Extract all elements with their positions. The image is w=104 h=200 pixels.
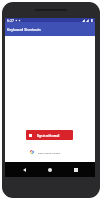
button[interactable]: Home — [43, 163, 57, 177]
button[interactable]: Recent apps — [69, 163, 83, 177]
button[interactable]: Sign in with Google — [26, 147, 73, 157]
staticText: 6:27 — [7, 18, 14, 22]
staticText: Sign in with Google — [38, 151, 61, 154]
button[interactable]: Sign in with email — [26, 130, 73, 140]
staticText: Keyboard Shortcuts — [7, 27, 41, 32]
staticText: Sign in with email — [37, 134, 60, 137]
button[interactable]: Back — [17, 163, 31, 177]
